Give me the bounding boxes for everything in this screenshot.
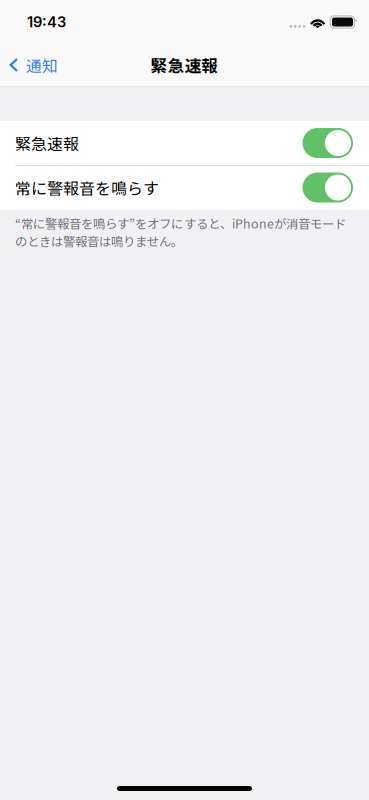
staticText: “常に警報音を鳴らす”をオフにすると、iPhoneが消音モードのときは警報音は鳴… <box>15 214 346 250</box>
button[interactable]: 常に警報音を鳴らす <box>0 165 369 209</box>
staticText: 19:43 <box>27 13 66 31</box>
staticText: 通知 <box>26 54 58 76</box>
staticText: 緊急速報 <box>150 53 218 77</box>
staticText: 常に警報音を鳴らす <box>15 176 159 199</box>
button[interactable]: 緊急速報 <box>0 121 369 165</box>
button[interactable]: 通知 <box>0 47 58 83</box>
staticText: 緊急速報 <box>15 131 79 155</box>
